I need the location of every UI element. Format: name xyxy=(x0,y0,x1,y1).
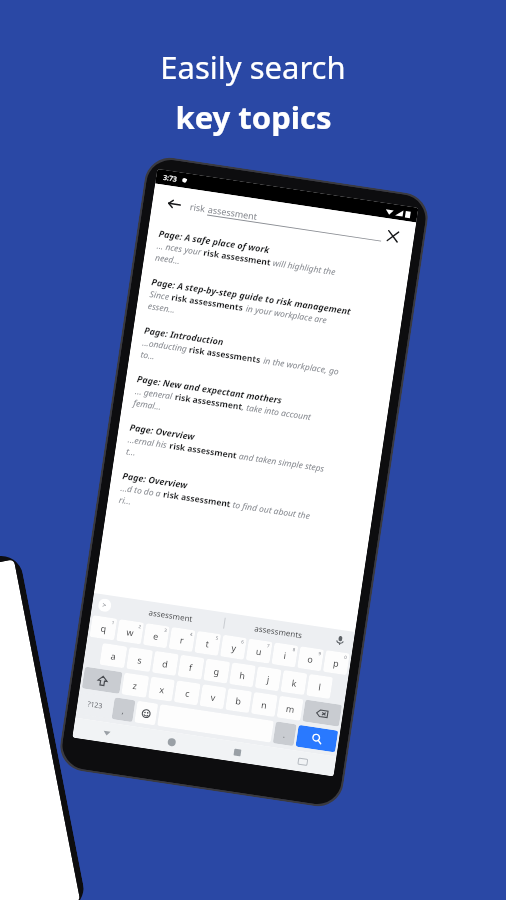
button[interactable]: risk xyxy=(189,200,383,241)
button[interactable]: Shift xyxy=(82,666,122,694)
button[interactable]: u xyxy=(246,638,273,664)
button[interactable]: ?123 xyxy=(78,692,113,719)
button[interactable]: y xyxy=(220,635,247,660)
button[interactable]: Home xyxy=(138,727,206,757)
button[interactable]: q xyxy=(89,615,117,641)
button[interactable]: Page: A safe place of work xyxy=(154,223,400,303)
staticText: 6 xyxy=(241,638,245,645)
button[interactable]: n xyxy=(251,692,278,717)
staticText: r xyxy=(179,633,185,646)
button[interactable]: x xyxy=(148,676,175,702)
button[interactable]: i xyxy=(271,642,298,668)
button[interactable]: Back xyxy=(161,191,186,216)
button[interactable]: z xyxy=(121,672,149,698)
button[interactable]: . xyxy=(273,721,297,746)
staticText: z xyxy=(132,679,139,691)
staticText: 7 xyxy=(267,642,271,649)
button[interactable]: assessment xyxy=(116,602,225,628)
staticText: ...ernal his xyxy=(127,433,170,452)
staticText: 0 xyxy=(344,654,348,660)
staticText: d xyxy=(161,657,169,670)
button[interactable]: Page: Overview xyxy=(125,417,371,497)
staticText: ri... xyxy=(118,494,133,508)
staticText: risk xyxy=(189,200,209,215)
staticText: n xyxy=(260,698,268,711)
staticText: 8 xyxy=(292,646,296,652)
button[interactable]: , xyxy=(111,697,135,722)
button[interactable]: Space xyxy=(157,704,274,743)
button[interactable]: Voice input xyxy=(331,631,349,649)
staticText: risk assessments xyxy=(171,291,245,314)
staticText: , take into account xyxy=(241,401,312,423)
button[interactable]: Page: Introduction xyxy=(139,320,385,400)
button[interactable]: assessments xyxy=(224,618,332,645)
button[interactable]: b xyxy=(225,688,252,713)
button[interactable]: d xyxy=(152,651,179,676)
staticText: l xyxy=(318,680,322,693)
staticText: . xyxy=(282,729,287,740)
staticText: 5 xyxy=(215,635,219,641)
button[interactable]: j xyxy=(255,666,282,691)
staticText: risk assessment xyxy=(203,247,272,268)
button[interactable]: c xyxy=(174,680,201,706)
staticText: , xyxy=(121,704,126,716)
button[interactable]: Close xyxy=(380,224,405,249)
staticText: 2 xyxy=(138,623,142,629)
staticText: c xyxy=(184,687,191,699)
staticText: key topics xyxy=(175,96,332,138)
button[interactable]: v xyxy=(199,684,226,709)
staticText: risk assessments xyxy=(188,343,262,366)
staticText: q xyxy=(100,621,108,634)
staticText: j xyxy=(266,673,271,685)
staticText: to find out about the xyxy=(230,498,312,522)
button[interactable]: e xyxy=(143,623,170,648)
button[interactable]: k xyxy=(280,670,307,695)
staticText: y xyxy=(231,641,237,654)
staticText: Page: Introduction xyxy=(143,324,224,347)
button[interactable]: Keyboard xyxy=(268,747,336,776)
staticText: a xyxy=(110,649,118,662)
button[interactable]: Back xyxy=(72,718,141,747)
staticText: Page: New and expectant mothers xyxy=(136,372,283,406)
button[interactable]: a xyxy=(99,643,127,668)
button[interactable]: r xyxy=(168,627,195,652)
staticText: p xyxy=(332,656,340,669)
staticText: femal... xyxy=(133,397,162,413)
staticText: will highlight the xyxy=(270,257,337,278)
button[interactable]: f xyxy=(177,655,204,680)
staticText: m xyxy=(285,702,296,715)
button[interactable]: m xyxy=(277,696,304,721)
button[interactable]: p xyxy=(323,650,350,675)
button[interactable]: t xyxy=(194,631,221,656)
staticText: ?123 xyxy=(87,699,104,712)
staticText: s xyxy=(137,653,143,666)
staticText: i xyxy=(283,649,288,661)
button[interactable]: Page: New and expectant mothers xyxy=(132,368,378,448)
staticText: Since xyxy=(149,288,172,303)
button[interactable]: h xyxy=(229,662,256,687)
staticText: k xyxy=(291,676,298,689)
button[interactable]: Page: A step-by-step guide to risk manag… xyxy=(146,271,392,352)
staticText: 9 xyxy=(318,650,322,656)
staticText: risk assessment xyxy=(174,391,243,413)
button[interactable]: o xyxy=(297,646,324,671)
button[interactable]: g xyxy=(203,658,230,684)
button[interactable]: More xyxy=(97,598,112,613)
button[interactable]: Backspace xyxy=(302,699,342,727)
staticText: 3 xyxy=(164,627,168,633)
button[interactable]: s xyxy=(126,647,153,672)
staticText: > xyxy=(101,600,108,611)
staticText: assessment xyxy=(207,203,258,222)
button[interactable]: Page: Overview xyxy=(117,465,363,545)
staticText: x xyxy=(159,683,165,695)
staticText: to... xyxy=(140,348,156,362)
staticText: o xyxy=(307,652,314,665)
button[interactable]: Search xyxy=(295,725,338,752)
button[interactable]: Emoji xyxy=(134,701,158,726)
staticText: u xyxy=(255,645,263,657)
staticText: in your workplace are xyxy=(243,302,328,326)
button[interactable]: l xyxy=(306,674,333,699)
staticText: g xyxy=(213,665,221,677)
button[interactable]: Recents xyxy=(203,737,271,767)
button[interactable]: w xyxy=(116,619,144,645)
